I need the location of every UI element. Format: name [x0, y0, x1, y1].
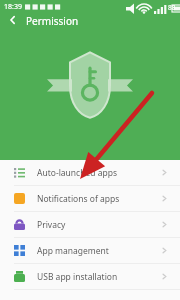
button[interactable]: USB app installation — [0, 264, 180, 289]
button[interactable]: Back — [0, 14, 26, 26]
staticText: App management — [37, 245, 109, 257]
button[interactable]: Notifications of apps — [0, 186, 180, 211]
staticText: 18:39 — [4, 2, 22, 12]
staticText: 88 — [168, 3, 176, 12]
staticText: Notifications of apps — [37, 193, 120, 205]
button[interactable]: Privacy — [0, 212, 180, 237]
button[interactable]: App management — [0, 238, 180, 263]
staticText: Privacy — [37, 219, 66, 231]
button[interactable]: Auto-launched apps — [0, 160, 180, 185]
staticText: Permission — [26, 14, 79, 26]
staticText: Auto-launched apps — [37, 167, 117, 179]
staticText: USB app installation — [37, 271, 118, 283]
